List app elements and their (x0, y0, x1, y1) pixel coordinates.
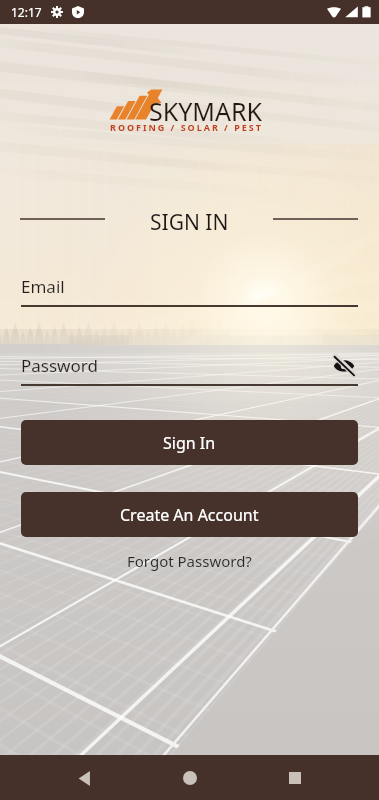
button[interactable]: Show password (330, 354, 358, 376)
staticText: Create An Account (120, 504, 259, 526)
button[interactable]: Recent apps (273, 756, 317, 800)
staticText: 12:17 (11, 4, 42, 20)
staticText: Email (21, 275, 65, 297)
button[interactable]: Back (62, 756, 106, 800)
staticText: SIGN IN (150, 208, 229, 230)
button[interactable]: Create An Account (21, 492, 358, 537)
staticText: ROOFING / SOLAR / PEST (110, 121, 263, 133)
button[interactable]: Home (168, 756, 212, 800)
staticText: SKYMARK (149, 94, 263, 128)
staticText: Forgot Password? (127, 551, 252, 571)
button[interactable]: Sign In (21, 420, 358, 465)
staticText: Password (21, 354, 98, 376)
staticText: Sign In (163, 432, 216, 454)
